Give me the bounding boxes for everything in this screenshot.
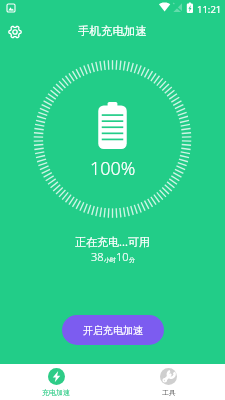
staticText: 10 (116, 249, 129, 264)
button[interactable]: 开启充电加速 (62, 315, 164, 345)
staticText: 充电加速 (42, 388, 70, 397)
button[interactable]: 工具 (112, 364, 225, 400)
staticText: 手机充电加速 (78, 24, 147, 38)
staticText: 分 (129, 256, 135, 264)
staticText: 38 (91, 249, 104, 264)
staticText: 100% (90, 156, 136, 181)
staticText: 小时 (104, 256, 116, 264)
button[interactable]: Settings (3, 20, 27, 44)
staticText: 正在充电...可用 (75, 234, 150, 249)
button[interactable]: 充电加速 (0, 364, 112, 400)
staticText: 工具 (162, 388, 176, 397)
staticText: 开启充电加速 (83, 324, 143, 337)
staticText: 11:21 (197, 3, 222, 16)
